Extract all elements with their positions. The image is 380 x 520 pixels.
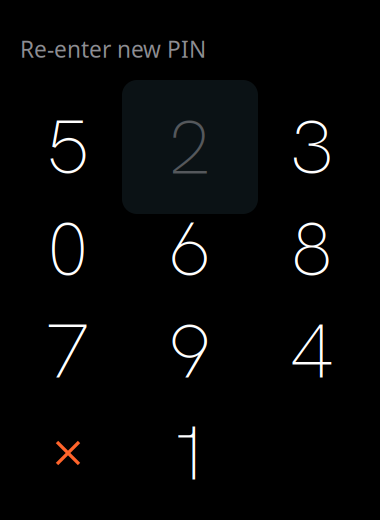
button[interactable]: 9 bbox=[129, 300, 251, 402]
staticText: 6 bbox=[168, 199, 211, 298]
staticText: 5 bbox=[46, 97, 89, 196]
button[interactable]: 5 bbox=[7, 96, 129, 198]
staticText: 1 bbox=[168, 403, 211, 502]
button[interactable]: 3 bbox=[251, 96, 373, 198]
button[interactable]: 1 bbox=[129, 402, 251, 504]
staticText: 4 bbox=[290, 301, 333, 400]
staticText: Re-enter new PIN bbox=[20, 34, 206, 64]
button[interactable]: 4 bbox=[251, 300, 373, 402]
button[interactable]: 8 bbox=[251, 198, 373, 300]
button[interactable]: Delete bbox=[7, 402, 129, 504]
staticText: 3 bbox=[291, 97, 333, 196]
button[interactable]: 6 bbox=[129, 198, 251, 300]
button[interactable]: 0 bbox=[7, 198, 129, 300]
staticText: 0 bbox=[46, 199, 89, 298]
staticText: 2 bbox=[168, 97, 211, 196]
staticText: 7 bbox=[46, 301, 89, 400]
staticText: 9 bbox=[168, 301, 211, 400]
staticText: 8 bbox=[290, 199, 333, 298]
button[interactable]: 2 bbox=[129, 96, 251, 198]
button[interactable]: 7 bbox=[7, 300, 129, 402]
